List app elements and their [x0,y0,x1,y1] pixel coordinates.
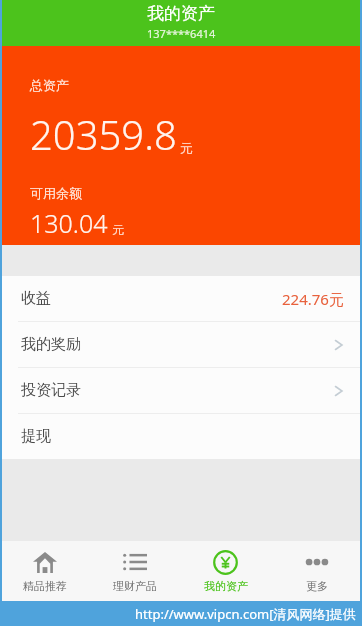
staticText: 收益 [21,289,51,308]
staticText: 理财产品 [113,579,157,593]
staticText: 137****6414 [147,26,216,41]
staticText: 精品推荐 [23,579,67,593]
staticText: 元 [112,222,124,237]
staticText: 20359.8 [30,107,177,161]
button[interactable]: 投资记录 [0,368,362,413]
staticText: 总资产 [30,77,69,93]
button[interactable]: 提现 [0,414,362,459]
button[interactable]: 我的资产 [180,541,271,601]
staticText: 224.76元 [282,289,344,309]
button[interactable]: 我的奖励 [0,322,362,367]
staticText: 可用余额 [30,185,82,201]
staticText: 我的奖励 [21,335,81,354]
button[interactable]: 收益 [0,276,362,321]
staticText: 投资记录 [21,381,81,400]
staticText: 提现 [21,427,51,446]
staticText: 更多 [306,579,328,593]
staticText: http://www.vipcn.com[清风网络]提供 [135,605,356,623]
staticText: 我的资产 [147,3,215,24]
staticText: 我的资产 [204,579,248,593]
button[interactable]: 精品推荐 [0,541,90,601]
staticText: 元 [180,140,193,156]
button[interactable]: 理财产品 [90,541,180,601]
button[interactable]: 更多 [271,541,362,601]
staticText: 130.04 [30,206,108,240]
